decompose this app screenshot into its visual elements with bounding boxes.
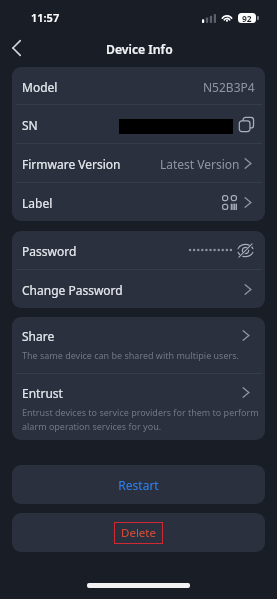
staticText: N52B3P4 <box>203 79 255 95</box>
button[interactable]: Delete <box>12 513 265 552</box>
button[interactable]: Restart <box>12 465 265 504</box>
staticText: 11:57 <box>31 10 60 25</box>
staticText: The same device can be shared with multi… <box>22 349 264 361</box>
button[interactable]: Show password <box>238 243 253 258</box>
staticText: Delete <box>121 525 156 541</box>
button[interactable]: Back <box>1 33 31 63</box>
staticText: Device Info <box>106 41 173 58</box>
button[interactable]: Change Password <box>12 270 265 308</box>
staticText: Change Password <box>22 282 123 298</box>
button[interactable]: Model <box>12 67 265 104</box>
staticText: Model <box>22 79 58 95</box>
staticText: Entrust <box>22 385 63 401</box>
staticText: Label <box>22 195 53 211</box>
button[interactable]: SN <box>12 105 265 143</box>
staticText: Latest Version <box>160 156 240 172</box>
button[interactable]: Copy serial number <box>239 117 254 132</box>
staticText: SN <box>22 117 38 133</box>
button[interactable]: Label <box>12 183 265 221</box>
button[interactable]: Share <box>12 317 265 373</box>
staticText: Entrust devices to service providers for… <box>22 406 264 433</box>
staticText: Restart <box>118 477 159 493</box>
staticText: Password <box>22 243 77 259</box>
staticText: Share <box>22 328 55 344</box>
button[interactable]: Password <box>12 231 265 269</box>
staticText: Firmware Version <box>22 156 121 172</box>
button[interactable]: Firmware Version <box>12 144 265 182</box>
button[interactable]: Entrust <box>12 374 265 440</box>
staticText: 92 <box>242 13 252 23</box>
